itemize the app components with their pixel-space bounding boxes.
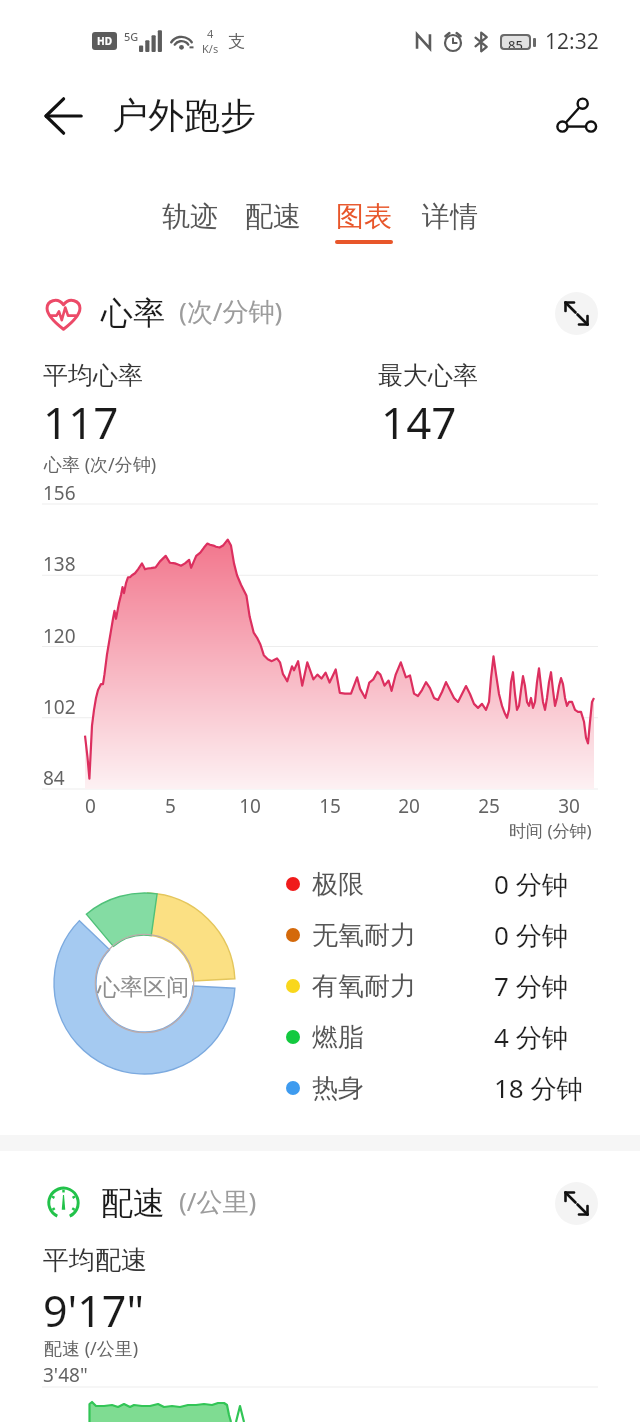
staticText: 5 — [165, 793, 176, 819]
staticText: 平均心率 — [43, 360, 143, 391]
button[interactable]: Back — [36, 88, 92, 144]
button[interactable]: 轨迹 — [145, 195, 235, 257]
button[interactable]: 极限 — [286, 859, 600, 909]
staticText: 有氧耐力 — [312, 970, 416, 1003]
staticText: 0 — [85, 793, 96, 819]
staticText: 12:32 — [545, 27, 599, 56]
staticText: 0 分钟 — [494, 866, 568, 902]
staticText: (次/分钟) — [179, 293, 283, 329]
staticText: 25 — [478, 793, 500, 819]
staticText: 18 分钟 — [494, 1070, 583, 1106]
staticText: 无氧耐力 — [312, 919, 416, 952]
staticText: 9'17" — [43, 1281, 145, 1340]
button[interactable]: 图表 — [319, 195, 409, 257]
staticText: 燃脂 — [312, 1021, 364, 1054]
staticText: (/公里) — [179, 1183, 257, 1219]
staticText: 配速 — [245, 199, 301, 234]
staticText: 热身 — [312, 1072, 364, 1105]
staticText: 最大心率 — [378, 360, 478, 391]
staticText: 心率 — [101, 293, 165, 333]
staticText: 0 分钟 — [494, 917, 568, 953]
staticText: 时间 (分钟) — [509, 819, 592, 842]
button[interactable]: Expand — [555, 292, 598, 335]
staticText: K/s — [202, 41, 219, 56]
staticText: 147 — [381, 392, 457, 452]
staticText: 117 — [43, 392, 119, 452]
staticText: 平均配速 — [43, 1244, 147, 1277]
staticText: 配速 (/公里) — [44, 1336, 139, 1361]
button[interactable]: 燃脂 — [286, 1012, 600, 1062]
staticText: 120 — [43, 623, 76, 649]
staticText: 图表 — [336, 199, 392, 234]
staticText: 20 — [398, 793, 420, 819]
staticText: 户外跑步 — [112, 93, 256, 138]
staticText: 84 — [43, 765, 65, 791]
staticText: 3'48" — [43, 1362, 88, 1388]
button[interactable]: Expand — [555, 1182, 598, 1225]
staticText: 配速 — [101, 1183, 165, 1223]
button[interactable]: 配速 — [228, 195, 318, 257]
staticText: 详情 — [422, 199, 478, 234]
staticText: 轨迹 — [162, 199, 218, 234]
button[interactable]: 热身 — [286, 1063, 600, 1113]
staticText: 心率 (次/分钟) — [44, 452, 157, 477]
staticText: 102 — [43, 694, 76, 720]
staticText: 5G — [124, 29, 139, 44]
button[interactable]: 无氧耐力 — [286, 910, 600, 960]
staticText: 4 分钟 — [494, 1019, 568, 1055]
staticText: 7 分钟 — [494, 968, 568, 1004]
staticText: 极限 — [312, 868, 364, 901]
staticText: 支 — [228, 31, 245, 52]
button[interactable]: 有氧耐力 — [286, 961, 600, 1011]
staticText: HD — [97, 34, 112, 48]
staticText: 85 — [508, 36, 523, 48]
staticText: 心率区间 — [97, 973, 189, 1002]
button[interactable]: Share — [545, 88, 601, 144]
staticText: 15 — [319, 793, 341, 819]
staticText: 10 — [239, 793, 261, 819]
staticText: 156 — [43, 480, 76, 506]
staticText: 30 — [558, 793, 580, 819]
staticText: 4 — [207, 26, 214, 41]
staticText: 138 — [43, 551, 76, 577]
button[interactable]: 详情 — [405, 195, 495, 257]
